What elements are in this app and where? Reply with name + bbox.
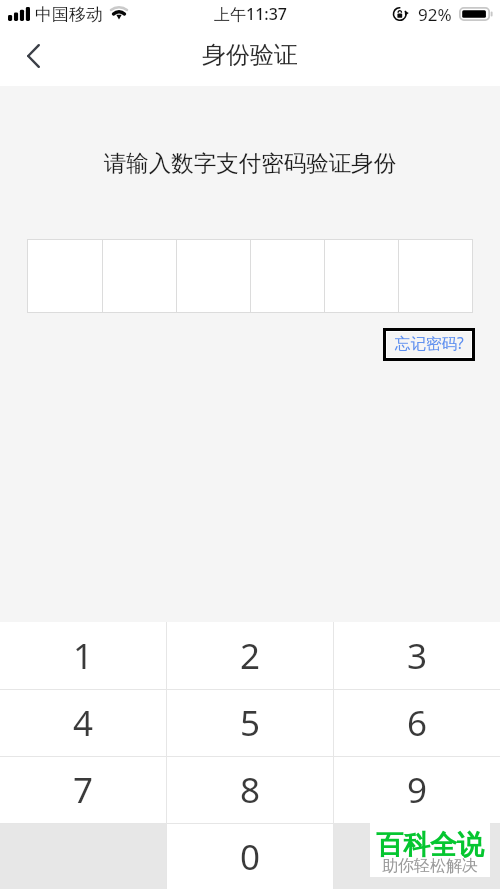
button[interactable]: Back bbox=[0, 30, 66, 86]
staticText: 忘记密码? bbox=[395, 332, 464, 353]
button[interactable]: 0 bbox=[167, 824, 333, 889]
staticText: 0 bbox=[240, 833, 261, 881]
staticText: 百科全说 bbox=[376, 828, 484, 862]
staticText: 4 bbox=[73, 699, 94, 747]
staticText: 7 bbox=[73, 766, 94, 814]
button[interactable]: 7 bbox=[0, 757, 166, 823]
button[interactable]: 6 bbox=[334, 690, 500, 756]
button[interactable]: 2 bbox=[167, 622, 333, 689]
button[interactable]: Payment password input bbox=[28, 240, 472, 312]
staticText: 上午11:37 bbox=[214, 3, 287, 25]
staticText: 2 bbox=[240, 632, 261, 680]
staticText: 5 bbox=[240, 699, 261, 747]
button[interactable]: 1 bbox=[0, 622, 166, 689]
staticText: 6 bbox=[407, 699, 428, 747]
staticText: 1 bbox=[73, 632, 94, 680]
button[interactable]: 8 bbox=[167, 757, 333, 823]
button[interactable]: 忘记密码? bbox=[387, 332, 471, 357]
button[interactable]: 4 bbox=[0, 690, 166, 756]
staticText: 助你轻松解决 bbox=[382, 856, 478, 876]
staticText: 8 bbox=[240, 766, 261, 814]
button[interactable] bbox=[334, 824, 500, 889]
button[interactable]: 3 bbox=[334, 622, 500, 689]
staticText: 9 bbox=[407, 766, 428, 814]
staticText: 身份验证 bbox=[202, 40, 298, 70]
button[interactable]: 9 bbox=[334, 757, 500, 823]
staticText: 请输入数字支付密码验证身份 bbox=[0, 149, 500, 177]
staticText: 92% bbox=[418, 3, 452, 26]
button[interactable]: 5 bbox=[167, 690, 333, 756]
staticText: 中国移动 bbox=[35, 4, 103, 25]
staticText: 3 bbox=[407, 632, 428, 680]
